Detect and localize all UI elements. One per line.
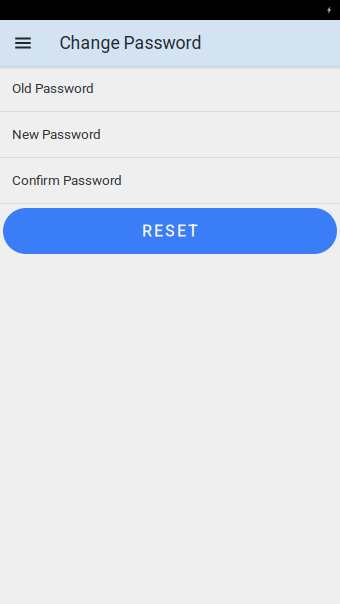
button[interactable]: R E S E T [3,208,337,254]
button[interactable]: Confirm Password [0,158,340,204]
staticText: Change Password [59,33,201,53]
button[interactable]: Open navigation menu [8,20,38,66]
button[interactable]: Old Password [0,66,340,112]
staticText: Old Password [12,81,94,96]
staticText: Confirm Password [12,173,122,188]
staticText: R E S E T [142,222,198,240]
button[interactable]: New Password [0,112,340,158]
staticText: New Password [12,127,101,142]
